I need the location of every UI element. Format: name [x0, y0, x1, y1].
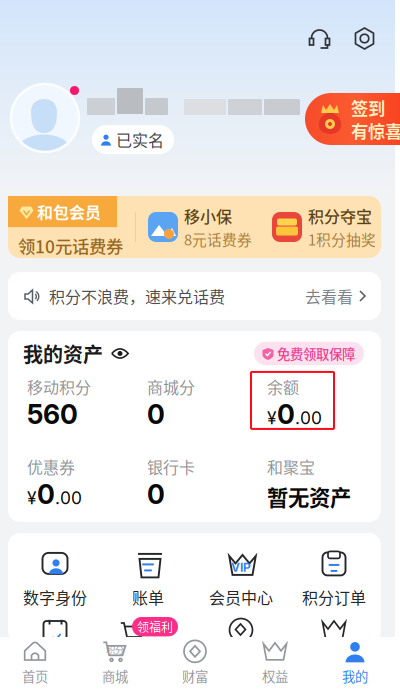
staticText: 数字身份	[23, 585, 87, 609]
button[interactable]: 数字身份	[8, 552, 101, 608]
staticText: 首页	[22, 666, 48, 686]
button[interactable]: 权益	[235, 637, 315, 689]
staticText: 0	[147, 398, 165, 430]
button[interactable]: 积分	[75, 637, 155, 689]
staticText: 1积分抽奖	[308, 228, 376, 250]
staticText: 银行卡	[147, 455, 195, 478]
staticText: 去看看	[305, 284, 353, 308]
staticText: 积分	[106, 643, 124, 656]
button[interactable]: 我的	[315, 637, 395, 689]
staticText: 0	[147, 478, 165, 510]
button[interactable]: Settings	[352, 26, 377, 51]
staticText: 和聚宝	[267, 455, 315, 478]
staticText: 商城分	[147, 375, 195, 398]
staticText: 商城	[102, 666, 128, 686]
staticText: 会员中心	[209, 585, 273, 609]
button[interactable]: Shortcut	[8, 617, 101, 643]
staticText: 免费领取保障	[277, 344, 355, 363]
staticText: 我的	[342, 666, 368, 686]
button[interactable]: 积分订单	[287, 552, 380, 608]
staticText: ¥	[267, 407, 277, 428]
button[interactable]: 已实名	[92, 125, 174, 154]
staticText: 已实名	[116, 128, 164, 151]
button[interactable]: 首页	[0, 637, 75, 689]
staticText: 账单	[132, 585, 164, 609]
staticText: 余额	[267, 375, 299, 398]
staticText: 优惠券	[27, 455, 75, 478]
button[interactable]: 账单	[101, 552, 194, 608]
staticText: 移动积分	[27, 375, 91, 398]
button[interactable]: 财富	[155, 637, 235, 689]
button[interactable]: 移小保	[148, 204, 252, 250]
button[interactable]: 积分不浪费，速来兑话费	[8, 272, 381, 320]
staticText: 有惊喜	[351, 118, 400, 143]
button[interactable]: Customer service	[307, 26, 332, 51]
button[interactable]: Shortcut	[287, 617, 380, 643]
staticText: 暂无资产	[267, 481, 351, 512]
staticText: VIP	[231, 560, 251, 575]
staticText: 积分订单	[302, 585, 366, 609]
button[interactable]: Shortcut	[101, 617, 194, 643]
staticText: 积分夺宝	[308, 204, 372, 227]
staticText: 0	[37, 478, 55, 510]
staticText: 8元话费券	[184, 228, 252, 250]
staticText: .00	[295, 407, 322, 428]
button[interactable]: VIP	[194, 552, 287, 608]
staticText: 积分不浪费，速来兑话费	[49, 284, 225, 308]
button[interactable]: 签到有惊喜	[305, 93, 400, 145]
staticText: 移小保	[184, 204, 232, 227]
staticText: 权益	[262, 666, 288, 686]
staticText: 财富	[182, 666, 208, 686]
staticText: 领10元话费券	[18, 233, 123, 258]
staticText: 领福利	[137, 618, 173, 635]
staticText: 560	[27, 398, 78, 430]
staticText: .00	[55, 487, 82, 508]
staticText: 0	[277, 398, 295, 430]
button[interactable]: 免费领取保障	[254, 342, 364, 365]
button[interactable]: 积分夺宝	[272, 204, 376, 250]
button[interactable]: Shortcut	[194, 617, 287, 643]
staticText: ¥	[27, 487, 37, 508]
staticText: 我的资产	[23, 339, 103, 368]
staticText: 签到	[351, 95, 385, 120]
staticText: 和包会员	[37, 200, 101, 223]
